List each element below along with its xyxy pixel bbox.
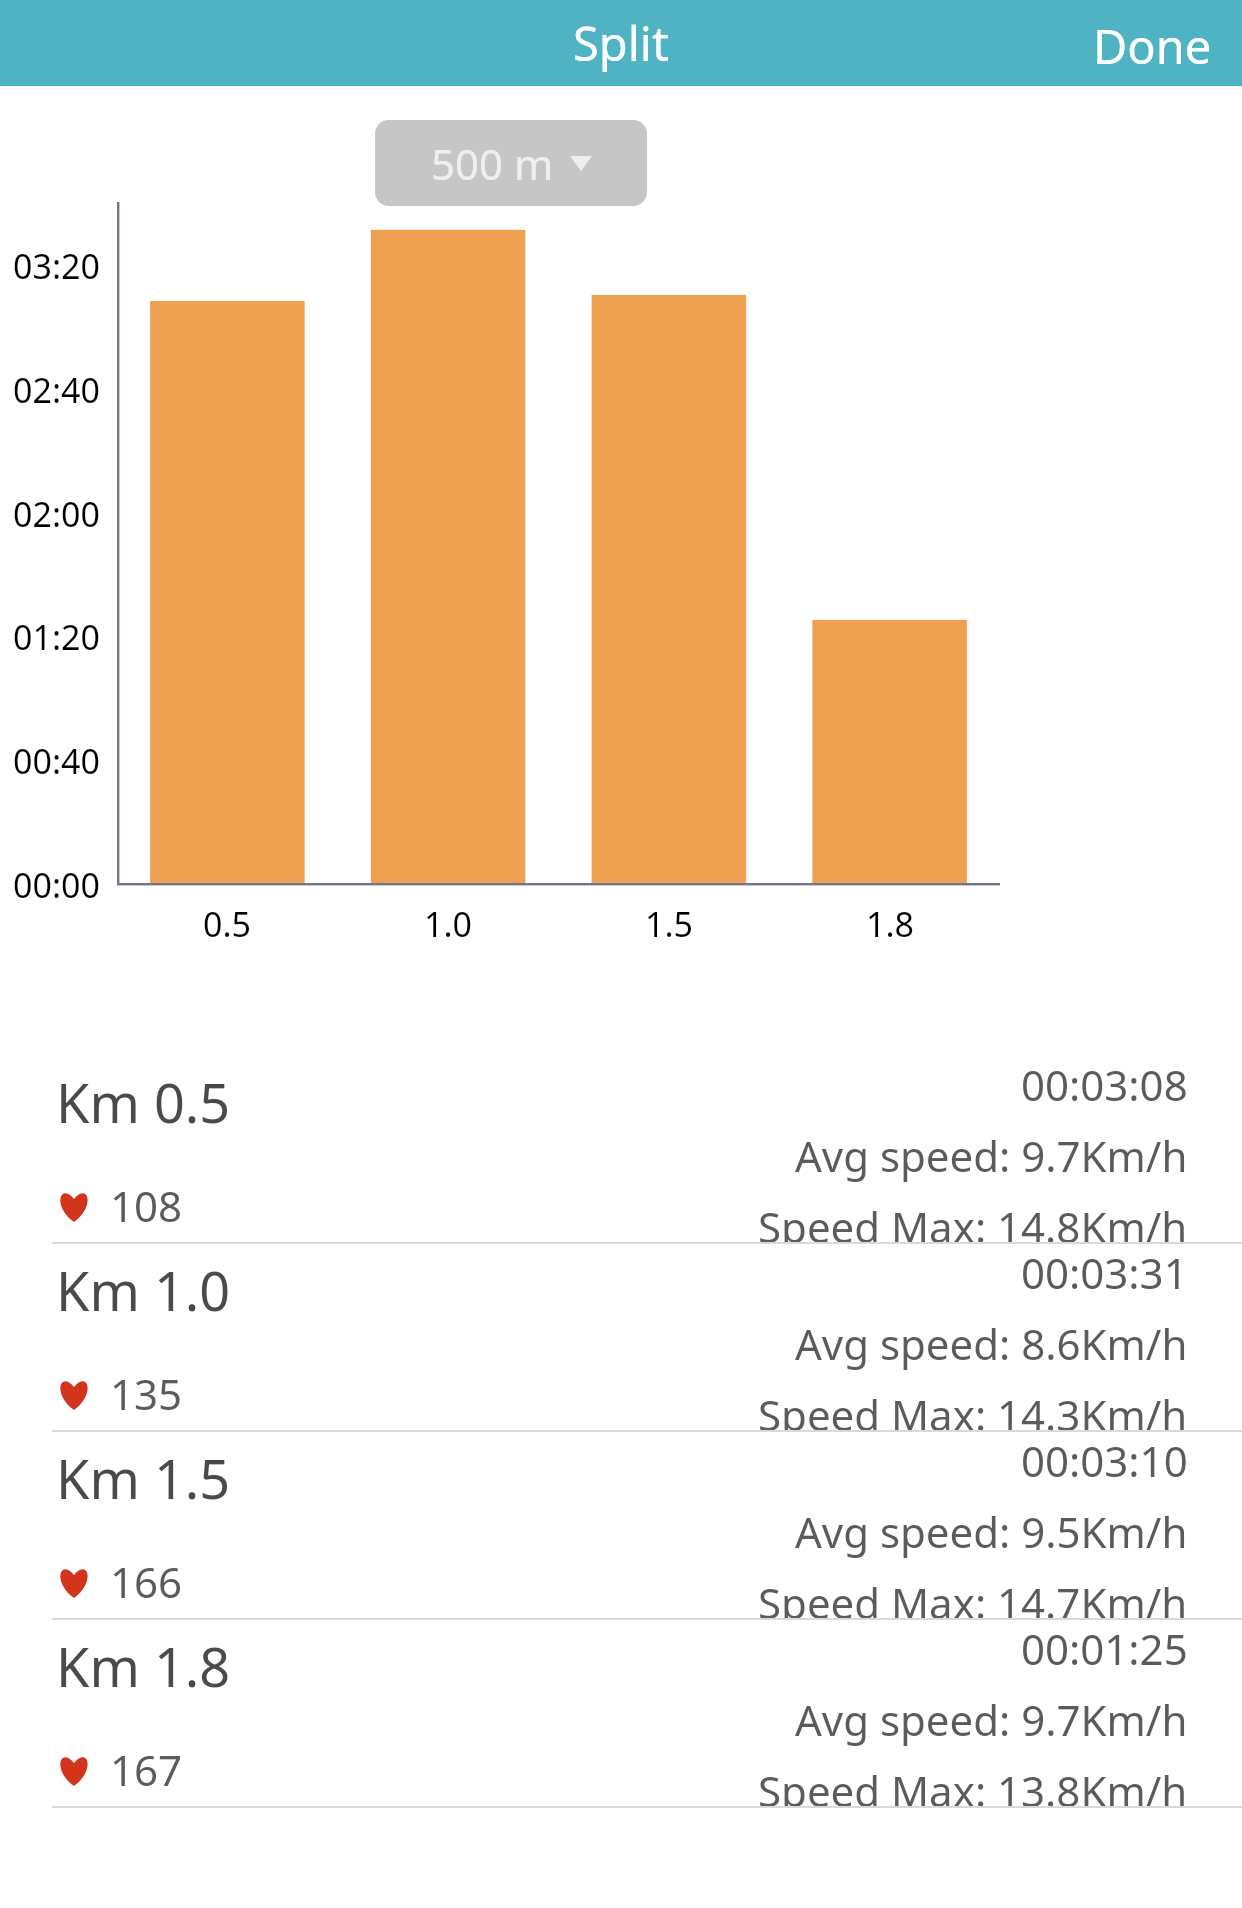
staticText: Avg speed: 9.7Km/h [795,1691,1188,1748]
staticText: 00:03:08 [1021,1056,1188,1113]
staticText: Km 1.0 [56,1253,231,1327]
staticText: 00:40 [0,738,100,784]
staticText: 03:20 [0,243,100,289]
staticText: Speed Max: 14.3Km/h [758,1386,1188,1430]
staticText: Avg speed: 9.7Km/h [795,1127,1188,1184]
staticText: 167 [110,1741,183,1798]
staticText: 500 m [431,135,554,192]
staticText: 0.5 [157,901,297,947]
staticText: Avg speed: 9.5Km/h [795,1503,1188,1560]
staticText: Avg speed: 8.6Km/h [795,1315,1188,1372]
staticText: Km 1.8 [56,1629,231,1703]
staticText: 1.5 [599,901,739,947]
staticText: 1.8 [820,901,960,947]
staticText: Km 1.5 [56,1441,231,1515]
button[interactable]: Done [1063,0,1242,86]
staticText: 00:03:31 [1021,1244,1188,1301]
button[interactable]: 500 m [375,120,647,206]
staticText: Done [1093,14,1212,72]
staticText: 1.0 [378,901,518,947]
staticText: 02:40 [0,367,100,413]
staticText: 01:20 [0,614,100,660]
staticText: Speed Max: 14.7Km/h [758,1574,1188,1618]
staticText: 135 [110,1365,183,1422]
button[interactable]: Km 1.0 [0,1244,1242,1430]
staticText: Km 0.5 [56,1065,231,1139]
staticText: 166 [110,1553,183,1610]
staticText: Speed Max: 14.8Km/h [758,1198,1188,1242]
staticText: 02:00 [0,491,100,537]
staticText: Split [573,11,669,75]
button[interactable]: Km 1.8 [0,1620,1242,1806]
staticText: 108 [110,1177,183,1234]
staticText: Speed Max: 13.8Km/h [758,1762,1188,1806]
staticText: 00:00 [0,862,100,908]
button[interactable]: Km 0.5 [0,1056,1242,1242]
button[interactable]: Km 1.5 [0,1432,1242,1618]
staticText: 00:03:10 [1021,1432,1188,1489]
staticText: 00:01:25 [1021,1620,1188,1677]
